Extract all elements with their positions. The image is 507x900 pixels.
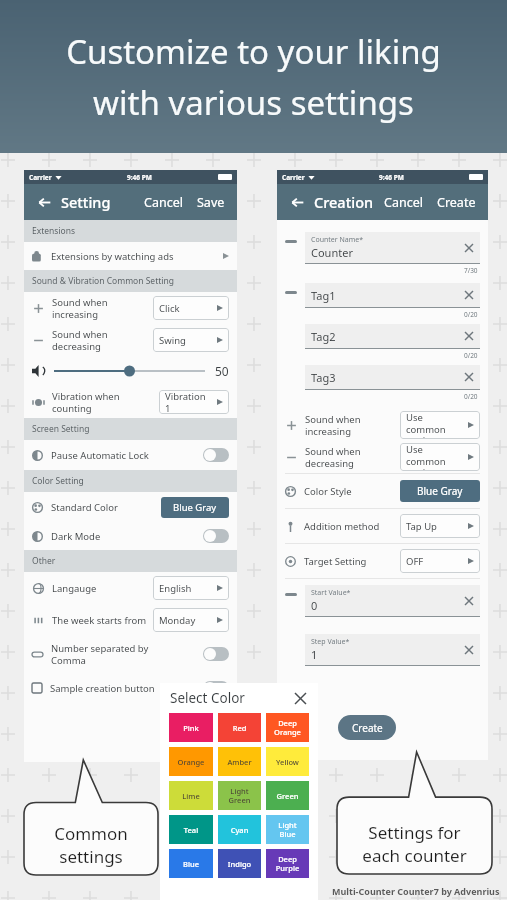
button[interactable]: Counter Name* [305,232,480,263]
button[interactable]: Step Value* [305,634,480,665]
staticText: Customize to your liking [0,29,507,74]
button[interactable]: Tap Up [400,514,480,538]
button[interactable]: Standard Color [24,492,237,522]
staticText: Blue Gray [173,501,217,514]
button[interactable]: Monday [153,608,229,632]
staticText: settings [24,845,158,868]
staticText: Vibration 1 [165,390,213,414]
button[interactable]: Vibration when counting [24,386,237,418]
button[interactable]: OFF [400,549,480,573]
staticText: Dark Mode [51,530,101,543]
staticText: Amber [218,757,261,767]
button[interactable]: Yellow [266,747,309,776]
button[interactable]: Start Value* [305,585,480,616]
button[interactable]: Cancel [141,194,186,211]
staticText: Blue Gray [417,484,463,498]
button[interactable]: The week starts from [24,604,237,636]
button[interactable]: Extensions by watching ads [24,242,237,270]
staticText: Counter [311,245,353,260]
button[interactable]: Pause Automatic Lock [24,440,237,470]
button[interactable]: English [153,576,229,600]
button[interactable]: Use common setting [400,411,480,439]
staticText: Vibration when counting [52,390,147,415]
button[interactable]: Vibration 1 [159,390,229,414]
button[interactable]: Sound when decreasing [277,441,488,473]
button[interactable]: Blue Gray [161,497,229,518]
staticText: Orange [169,757,213,767]
staticText: Deep Orange [266,718,309,737]
button[interactable] [203,529,229,543]
button[interactable]: Deep Orange [266,713,309,742]
staticText: Save [177,731,199,745]
button[interactable]: Indigo [218,849,261,878]
button[interactable]: Light Blue [266,815,309,844]
button[interactable]: Blue Gray [400,480,480,502]
button[interactable]: Sound when increasing [277,409,488,441]
button[interactable]: Color Style [277,474,488,508]
button[interactable]: Close [292,690,308,706]
button[interactable]: Click [153,296,229,320]
button[interactable]: Tag3 [305,365,480,389]
staticText: Light Blue [266,820,309,839]
button[interactable]: Tag2 [305,324,480,348]
button[interactable]: Deep Purple [266,849,309,878]
button[interactable]: Red [218,713,261,742]
button[interactable]: Addition method [277,509,488,543]
staticText: each counter [337,844,492,867]
button[interactable]: Teal [169,815,213,844]
button[interactable]: Back [33,191,55,213]
button[interactable]: Lime [169,781,213,810]
button[interactable]: Langauge [24,572,237,604]
button[interactable]: Amber [218,747,261,776]
button[interactable]: Light Green [218,781,261,810]
staticText: Settings for [337,821,492,844]
staticText: Multi-Counter Counter7 by Advenrius [332,885,500,897]
button[interactable]: Cancel [381,194,426,211]
button[interactable]: Create [434,194,479,211]
button[interactable] [203,647,229,661]
staticText: Sound when increasing [305,413,400,438]
button[interactable]: Orange [169,747,213,776]
button[interactable]: Sound when decreasing [24,324,237,356]
button[interactable]: Target Setting [277,544,488,578]
staticText: Creation [314,192,374,212]
button[interactable]: Sample creation button [24,672,237,704]
button[interactable] [54,364,205,378]
button[interactable]: Tag1 [305,283,480,307]
staticText: 0/20 [464,310,478,319]
staticText: Use common setting [406,443,464,471]
staticText: with various settings [0,80,507,125]
button[interactable]: Save [194,194,228,211]
staticText: Tag1 [311,288,336,303]
staticText: Blue [169,859,213,869]
button[interactable]: Save [161,726,215,750]
button[interactable]: Back [286,191,308,213]
button[interactable]: Dark Mode [24,522,237,550]
staticText: Cyan [218,825,261,835]
staticText: Lime [169,791,213,801]
button[interactable]: Cyan [218,815,261,844]
staticText: Other [32,555,56,567]
button[interactable]: Blue [169,849,213,878]
staticText: Cancel [144,194,183,211]
button[interactable] [203,681,229,695]
staticText: Tag2 [311,329,336,344]
button[interactable]: Create [338,715,396,740]
staticText: Counter Name* [311,235,364,245]
staticText: Teal [169,825,213,835]
staticText: Step Value* [311,637,350,647]
staticText: Tag3 [311,370,336,385]
staticText: The week starts from [52,614,147,627]
button[interactable]: Pink [169,713,213,742]
button[interactable]: Sound when increasing [24,292,237,324]
button[interactable]: Number separated by Comma [24,636,237,672]
button[interactable]: Use common setting [400,443,480,471]
staticText: Light Green [218,786,261,805]
staticText: 50 [215,363,229,379]
staticText: 9:46 PM [127,173,152,182]
staticText: Swing [159,334,186,347]
staticText: OFF [406,555,424,568]
button[interactable]: Green [266,781,309,810]
button[interactable]: Swing [153,328,229,352]
button[interactable] [203,448,229,462]
